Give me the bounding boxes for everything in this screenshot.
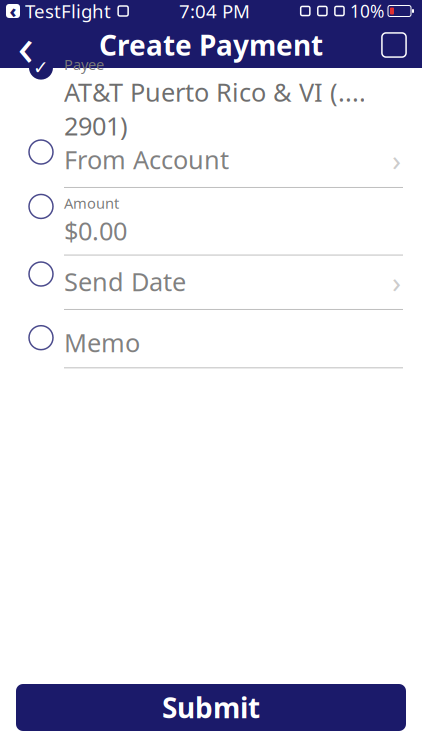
staticText: › — [392, 140, 401, 179]
staticText: TestFlight — [25, 0, 111, 23]
staticText: AT&T Puerto Rico & VI (....2901) — [64, 75, 366, 142]
staticText: ✓ — [33, 57, 49, 78]
staticText: Payee — [64, 55, 104, 74]
staticText: Submit — [162, 689, 260, 726]
staticText: ‹ — [17, 10, 34, 80]
button[interactable]: From Account — [0, 133, 422, 194]
button[interactable]: Send Date — [0, 255, 422, 316]
staticText: Send Date — [64, 265, 186, 298]
button[interactable]: Submit — [16, 684, 406, 731]
button[interactable]: Amount — [0, 194, 422, 255]
button[interactable]: ✓ — [0, 72, 422, 133]
staticText: › — [392, 262, 401, 301]
staticText: ‹ — [9, 0, 16, 22]
button[interactable]: Back — [0, 22, 52, 68]
staticText: Amount — [64, 193, 119, 213]
staticText: Create Payment — [99, 26, 323, 64]
button[interactable]: Settings — [366, 22, 422, 68]
button[interactable]: Memo — [0, 316, 422, 377]
staticText: Memo — [64, 326, 140, 359]
staticText: 7:04 PM — [179, 0, 250, 23]
staticText: 10% — [350, 0, 384, 22]
staticText: $0.00 — [64, 214, 127, 247]
staticText: From Account — [64, 143, 229, 176]
